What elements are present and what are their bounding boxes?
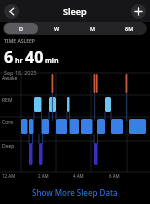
button[interactable]: Back	[4, 4, 19, 19]
staticText: TIME ASLEEP	[4, 38, 35, 45]
staticText: 40	[25, 46, 44, 68]
staticText: Sep 18, 2025	[4, 69, 37, 76]
button[interactable]: W	[40, 23, 74, 34]
staticText: 6 AM	[109, 173, 120, 179]
staticText: hr	[15, 56, 23, 66]
staticText: 4 AM	[73, 173, 84, 179]
staticText: 2 AM	[38, 173, 49, 179]
staticText: Deep	[2, 143, 15, 150]
staticText: D	[19, 25, 24, 32]
staticText: Core	[2, 119, 13, 126]
button[interactable]: Show More Sleep Data	[0, 184, 150, 200]
staticText: Show More Sleep Data	[32, 187, 118, 198]
button[interactable]: Add sleep data	[131, 4, 146, 19]
button[interactable]: M	[76, 23, 110, 34]
staticText: 6M	[125, 25, 134, 32]
staticText: W	[54, 25, 60, 32]
staticText: min	[45, 56, 59, 66]
staticText: Sleep	[63, 5, 87, 17]
staticText: 12 AM	[2, 173, 16, 179]
staticText: Awake	[2, 75, 18, 82]
staticText: M	[90, 25, 96, 32]
button[interactable]: D	[4, 23, 38, 34]
staticText: REM	[2, 97, 13, 104]
button[interactable]: 6M	[112, 23, 146, 34]
staticText: 6	[4, 46, 14, 68]
